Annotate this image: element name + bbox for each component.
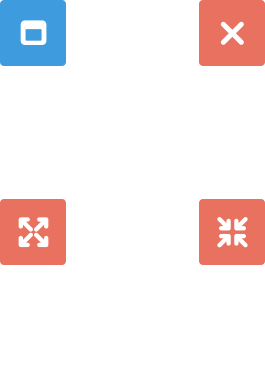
button[interactable]: Exit full screen: [199, 199, 265, 265]
button[interactable]: Close: [199, 0, 265, 66]
button[interactable]: Enter full screen: [0, 199, 66, 265]
button[interactable]: Stop: [0, 0, 66, 66]
